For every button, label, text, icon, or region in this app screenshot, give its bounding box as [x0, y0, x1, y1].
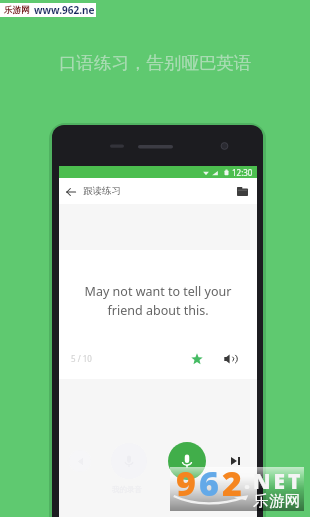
button[interactable]: Record: [168, 442, 206, 480]
button[interactable]: Next: [225, 451, 245, 471]
button[interactable]: Word list folder: [233, 182, 251, 200]
staticText: www.962.net: [34, 3, 96, 17]
staticText: 跟读练习: [83, 185, 121, 197]
staticText: .NET: [244, 467, 304, 496]
staticText: 5 / 10: [71, 353, 92, 364]
staticText: 6: [199, 460, 219, 506]
staticText: 口语练习，告别哑巴英语: [59, 52, 252, 74]
staticText: 乐游网: [4, 5, 30, 16]
staticText: 12:30: [232, 167, 253, 178]
staticText: 2: [222, 460, 242, 506]
button[interactable]: Favorite: [186, 348, 207, 369]
button[interactable]: Back: [62, 183, 79, 200]
staticText: May not want to tell your friend about t…: [82, 283, 234, 319]
staticText: 乐游网: [253, 491, 301, 511]
staticText: 9: [176, 460, 196, 506]
button[interactable]: Play audio: [220, 348, 241, 369]
